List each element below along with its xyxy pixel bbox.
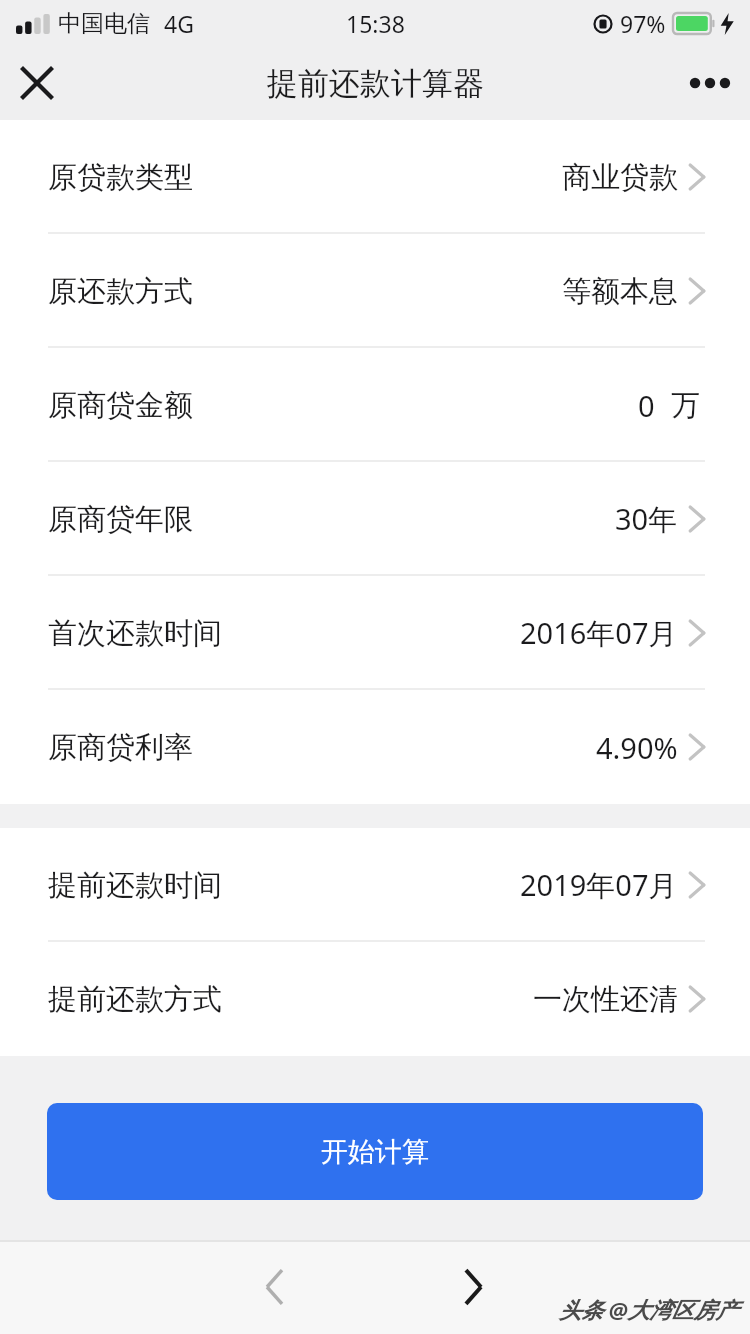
button[interactable]: 提前还款时间 — [0, 828, 750, 942]
staticText: 4.90% — [596, 728, 678, 767]
button[interactable]: 首次还款时间 — [0, 576, 750, 690]
button[interactable]: 提前还款方式 — [0, 942, 750, 1056]
staticText: 等额本息 — [562, 273, 678, 310]
staticText: 0 — [638, 386, 655, 425]
button[interactable]: 原贷款类型 — [0, 120, 750, 234]
staticText: 首次还款时间 — [48, 615, 222, 652]
staticText: 2016年07月 — [520, 613, 678, 653]
staticText: 97% — [620, 8, 666, 39]
staticText: 原商贷年限 — [48, 501, 193, 538]
staticText: 开始计算 — [321, 1135, 429, 1169]
button[interactable]: 开始计算 — [47, 1103, 703, 1200]
button[interactable]: 原商贷金额 — [0, 348, 750, 462]
button[interactable]: 原还款方式 — [0, 234, 750, 348]
staticText: 原贷款类型 — [48, 159, 193, 196]
button[interactable]: 原商贷利率 — [0, 690, 750, 804]
button[interactable]: Close — [0, 46, 74, 120]
staticText: 2019年07月 — [520, 865, 678, 905]
staticText: 原还款方式 — [48, 273, 193, 310]
staticText: 万 — [671, 387, 700, 424]
staticText: 15:38 — [346, 8, 405, 39]
staticText: 提前还款计算器 — [267, 64, 484, 103]
staticText: 原商贷利率 — [48, 729, 193, 766]
staticText: 提前还款时间 — [48, 867, 222, 904]
staticText: 30年 — [615, 499, 678, 539]
staticText: 原商贷金额 — [48, 387, 193, 424]
button[interactable]: Forward — [443, 1257, 503, 1317]
staticText: 中国电信 — [58, 9, 150, 38]
staticText: 商业贷款 — [562, 159, 678, 196]
staticText: 4G — [164, 8, 194, 39]
button[interactable]: 原商贷年限 — [0, 462, 750, 576]
button[interactable]: More options — [670, 46, 750, 120]
staticText: 一次性还清 — [533, 981, 678, 1018]
staticText: 头条 @大湾区房产 — [559, 1294, 738, 1324]
button[interactable]: Back — [245, 1257, 305, 1317]
staticText: 提前还款方式 — [48, 981, 222, 1018]
